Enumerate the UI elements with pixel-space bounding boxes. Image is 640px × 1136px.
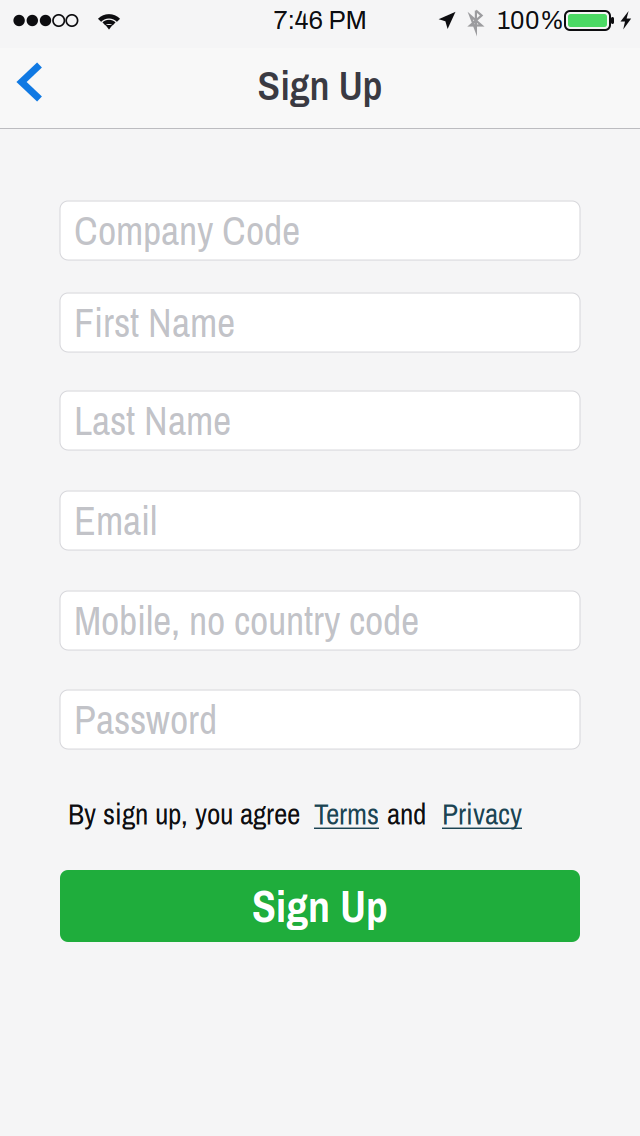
staticText: Sign Up: [252, 876, 388, 936]
button[interactable]: Terms: [314, 794, 379, 834]
button[interactable]: Privacy: [442, 794, 522, 834]
button[interactable]: Email: [60, 491, 580, 550]
button[interactable]: First Name: [60, 293, 580, 352]
staticText: Company Code: [74, 204, 300, 257]
staticText: Password: [74, 693, 217, 746]
staticText: Privacy: [442, 794, 522, 834]
button[interactable]: Mobile, no country code: [60, 591, 580, 650]
button[interactable]: Last Name: [60, 391, 580, 450]
button[interactable]: Company Code: [60, 201, 580, 260]
staticText: Terms: [314, 794, 379, 834]
button[interactable]: Back: [0, 48, 59, 128]
staticText: Last Name: [74, 394, 231, 447]
staticText: Mobile, no country code: [74, 594, 419, 647]
staticText: 7:46 PM: [273, 7, 366, 34]
staticText: 100%: [497, 7, 564, 34]
staticText: By sign up, you agree: [68, 794, 300, 834]
staticText: and: [387, 794, 426, 834]
staticText: Email: [74, 494, 157, 547]
staticText: First Name: [74, 296, 235, 349]
button[interactable]: Password: [60, 690, 580, 749]
staticText: Sign Up: [257, 57, 382, 113]
button[interactable]: Sign Up: [60, 870, 580, 942]
